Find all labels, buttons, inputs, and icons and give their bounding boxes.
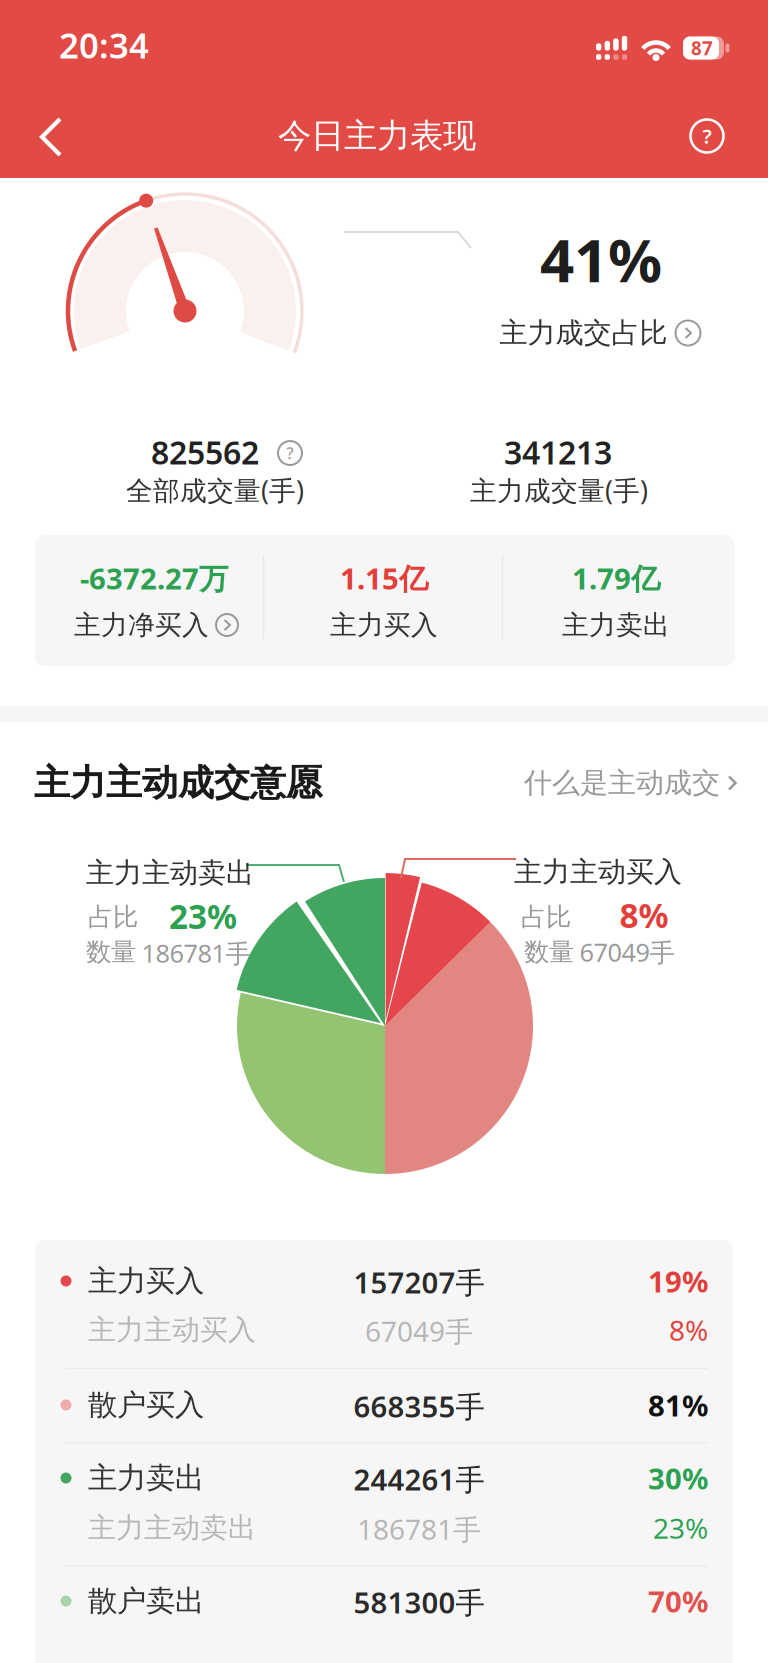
staticText: 67049手 bbox=[579, 935, 674, 969]
staticText: 581300手 bbox=[353, 1582, 484, 1621]
staticText: 主力卖出 bbox=[562, 609, 670, 641]
button[interactable]: 主力成交占比 bbox=[499, 316, 700, 350]
staticText: 186781手 bbox=[357, 1510, 481, 1548]
staticText: -6372.27万 bbox=[80, 558, 228, 597]
button[interactable]: 主力净买入 bbox=[74, 609, 238, 641]
staticText: 23% bbox=[653, 1509, 708, 1547]
staticText: 87 bbox=[691, 36, 713, 60]
staticText: 今日主力表现 bbox=[278, 115, 476, 156]
button[interactable]: 返回 bbox=[30, 111, 74, 163]
staticText: 主力主动买入 bbox=[88, 1313, 256, 1347]
staticText: 数量 bbox=[524, 936, 574, 967]
staticText: 数量 bbox=[86, 936, 136, 967]
staticText: 主力主动卖出 bbox=[88, 1511, 256, 1545]
staticText: 散户卖出 bbox=[88, 1583, 204, 1619]
staticText: 41% bbox=[540, 219, 662, 299]
staticText: 1.15亿 bbox=[340, 558, 428, 597]
staticText: 186781手 bbox=[141, 936, 250, 970]
staticText: 67049手 bbox=[365, 1312, 473, 1350]
staticText: 主力卖出 bbox=[88, 1460, 204, 1496]
staticText: 主力买入 bbox=[330, 609, 438, 641]
staticText: 1.79亿 bbox=[572, 558, 660, 597]
button[interactable]: 什么是主动成交 bbox=[524, 766, 740, 800]
staticText: 散户买入 bbox=[88, 1387, 204, 1423]
staticText: 244261手 bbox=[353, 1459, 484, 1498]
staticText: 668355手 bbox=[353, 1386, 484, 1425]
button[interactable]: 帮助 bbox=[685, 114, 729, 158]
staticText: 主力买入 bbox=[88, 1263, 204, 1299]
staticText: 主力主动卖出 bbox=[86, 856, 254, 890]
staticText: 占比 bbox=[521, 901, 571, 932]
staticText: ? bbox=[702, 123, 711, 149]
staticText: 占比 bbox=[88, 901, 138, 932]
button[interactable]: 说明 bbox=[275, 438, 305, 468]
staticText: 81% bbox=[648, 1385, 708, 1424]
staticText: 20:34 bbox=[59, 22, 149, 68]
staticText: 主力主动成交意愿 bbox=[34, 761, 322, 805]
staticText: 什么是主动成交 bbox=[524, 766, 720, 800]
staticText: 825562 bbox=[151, 431, 259, 473]
staticText: 全部成交量(手) bbox=[126, 472, 304, 508]
staticText: 主力净买入 bbox=[74, 609, 209, 641]
staticText: 主力成交占比 bbox=[499, 316, 667, 350]
staticText: 70% bbox=[648, 1581, 708, 1620]
staticText: 341213 bbox=[504, 431, 612, 473]
staticText: 157207手 bbox=[353, 1262, 484, 1301]
staticText: ? bbox=[286, 442, 293, 464]
staticText: 8% bbox=[669, 1311, 708, 1349]
staticText: 19% bbox=[648, 1261, 708, 1300]
staticText: 主力成交量(手) bbox=[470, 472, 648, 508]
staticText: 23% bbox=[169, 894, 237, 938]
staticText: 主力主动买入 bbox=[514, 855, 682, 889]
staticText: 8% bbox=[619, 893, 668, 937]
staticText: 30% bbox=[648, 1458, 708, 1497]
